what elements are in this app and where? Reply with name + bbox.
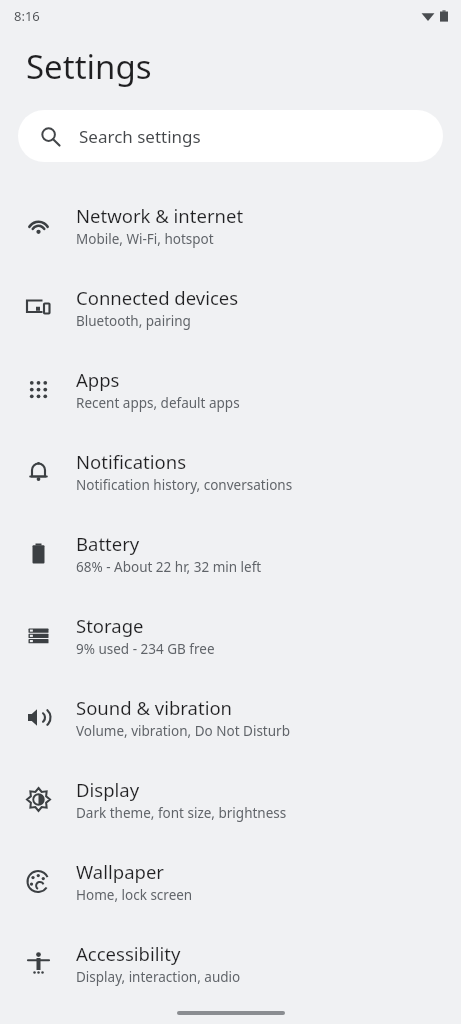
button[interactable]: Apps bbox=[0, 348, 461, 430]
staticText: Battery bbox=[76, 531, 140, 556]
staticText: Volume, vibration, Do Not Disturb bbox=[76, 722, 290, 740]
staticText: Wallpaper bbox=[76, 859, 164, 884]
button[interactable]: Search settings bbox=[18, 110, 443, 162]
staticText: Sound & vibration bbox=[76, 695, 233, 720]
staticText: 8:16 bbox=[14, 7, 40, 25]
button[interactable]: Connected devices bbox=[0, 266, 461, 348]
button[interactable]: Network & internet bbox=[0, 184, 461, 266]
staticText: Dark theme, font size, brightness bbox=[76, 804, 287, 822]
button[interactable]: Storage bbox=[0, 594, 461, 676]
staticText: Connected devices bbox=[76, 285, 239, 310]
staticText: Home, lock screen bbox=[76, 886, 193, 904]
staticText: 9% used - 234 GB free bbox=[76, 640, 215, 658]
staticText: Settings bbox=[26, 44, 152, 89]
staticText: Notification history, conversations bbox=[76, 476, 293, 494]
staticText: Mobile, Wi-Fi, hotspot bbox=[76, 230, 214, 248]
staticText: Search settings bbox=[79, 125, 201, 148]
button[interactable]: Notifications bbox=[0, 430, 461, 512]
staticText: Bluetooth, pairing bbox=[76, 312, 191, 330]
button[interactable]: Display bbox=[0, 758, 461, 840]
staticText: Notifications bbox=[76, 449, 187, 474]
staticText: 68% - About 22 hr, 32 min left bbox=[76, 558, 262, 576]
button[interactable]: Sound & vibration bbox=[0, 676, 461, 758]
staticText: Display, interaction, audio bbox=[76, 968, 241, 986]
staticText: Accessibility bbox=[76, 941, 181, 966]
button[interactable]: Wallpaper bbox=[0, 840, 461, 922]
staticText: Network & internet bbox=[76, 203, 244, 228]
staticText: Display bbox=[76, 777, 140, 802]
staticText: Storage bbox=[76, 613, 144, 638]
staticText: Recent apps, default apps bbox=[76, 394, 240, 412]
button[interactable]: Battery bbox=[0, 512, 461, 594]
button[interactable]: Accessibility bbox=[0, 922, 461, 1004]
staticText: Apps bbox=[76, 367, 120, 392]
